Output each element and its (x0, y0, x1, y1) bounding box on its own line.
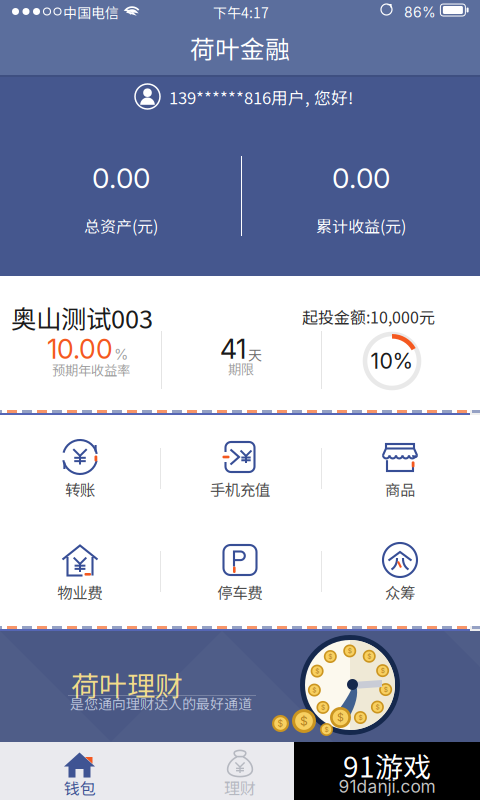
staticText: $ (375, 703, 379, 711)
staticText: 10% (370, 348, 413, 374)
button[interactable]: 商品 (320, 415, 480, 518)
staticText: 总资产(元) (84, 214, 158, 237)
staticText: 86% (404, 4, 436, 21)
staticText: 91danji.com (338, 776, 435, 797)
staticText: 停车费 (217, 581, 262, 603)
staticText: $ (324, 725, 328, 733)
staticText: 奥山测试003 (11, 299, 153, 336)
staticText: $ (315, 667, 319, 675)
staticText: 中国电信 (63, 2, 119, 22)
button[interactable]: 手机充值 (160, 415, 320, 518)
staticText: $ (321, 703, 325, 711)
button[interactable]: 钱包 (0, 742, 160, 800)
staticText: 139******816用户, 您好! (169, 85, 353, 109)
staticText: 荷叶金融 (190, 30, 290, 66)
staticText: $ (277, 718, 283, 729)
staticText: $ (338, 714, 342, 722)
button[interactable]: 理财 (160, 742, 320, 800)
staticText: 荷叶理财 (71, 664, 183, 704)
staticText: 天 (248, 344, 262, 364)
staticText: $ (367, 652, 371, 660)
staticText: 理财 (224, 776, 256, 799)
button[interactable]: 众筹 (320, 518, 480, 621)
staticText: 91游戏 (343, 745, 431, 785)
staticText: 商品 (385, 478, 415, 500)
staticText: 钱包 (64, 776, 96, 799)
staticText: $ (348, 647, 352, 655)
staticText: $ (328, 652, 332, 660)
staticText: 众筹 (385, 581, 415, 603)
staticText: $ (381, 667, 385, 675)
staticText: $ (312, 686, 316, 694)
staticText: 预期年收益率 (52, 360, 130, 379)
staticText: 起投金额:10,000元 (302, 305, 435, 328)
staticText: $ (358, 714, 362, 722)
staticText: 期限 (228, 359, 254, 378)
staticText: 累计收益(元) (316, 214, 406, 237)
staticText: 下午4:17 (213, 2, 269, 22)
staticText: $ (337, 711, 344, 724)
staticText: $ (384, 686, 388, 694)
staticText: 41 (220, 333, 246, 365)
staticText: 0.00 (92, 161, 150, 195)
staticText: 手机充值 (210, 478, 270, 500)
staticText: % (114, 345, 128, 363)
staticText: $ (300, 714, 308, 728)
staticText: 转账 (65, 478, 95, 500)
staticText: 物业费 (57, 581, 102, 603)
button[interactable]: 奥山测试003 (0, 276, 480, 410)
staticText: 0.00 (332, 161, 390, 195)
staticText: 是您通向理财达人的最好通道 (70, 693, 252, 713)
button[interactable]: 停车费 (160, 518, 320, 621)
button[interactable]: 物业费 (0, 518, 160, 621)
button[interactable]: $ (0, 631, 480, 742)
button[interactable]: 我的 (320, 742, 480, 800)
staticText: 10.00 (47, 333, 113, 365)
button[interactable]: 转账 (0, 415, 160, 518)
